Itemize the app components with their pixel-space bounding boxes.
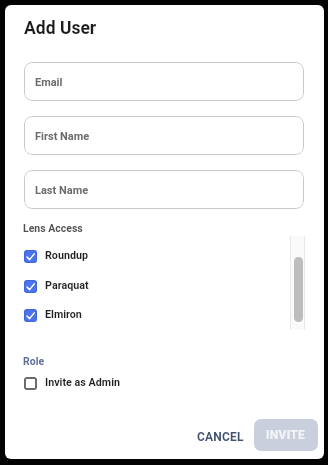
staticText: Lens Access xyxy=(23,222,83,234)
button[interactable]: INVITE xyxy=(254,419,318,451)
button[interactable]: Roundup xyxy=(24,250,134,264)
staticText: Invite as Admin xyxy=(45,376,121,389)
staticText: Add User xyxy=(24,18,97,39)
button[interactable]: Email xyxy=(24,62,304,101)
button[interactable]: Paraquat xyxy=(24,280,134,294)
button[interactable]: Invite as Admin xyxy=(24,377,134,391)
staticText: Email xyxy=(35,76,63,89)
button[interactable]: Last Name xyxy=(24,170,304,209)
staticText: CANCEL xyxy=(197,430,244,444)
staticText: Roundup xyxy=(45,249,89,262)
button[interactable]: First Name xyxy=(24,116,304,155)
button[interactable]: Elmiron xyxy=(24,309,134,323)
staticText: Last Name xyxy=(35,184,89,197)
staticText: INVITE xyxy=(266,428,306,442)
button[interactable]: CANCEL xyxy=(185,422,253,450)
staticText: Role xyxy=(23,355,45,367)
staticText: Paraquat xyxy=(45,279,89,292)
staticText: Elmiron xyxy=(45,308,82,321)
staticText: First Name xyxy=(35,130,90,143)
